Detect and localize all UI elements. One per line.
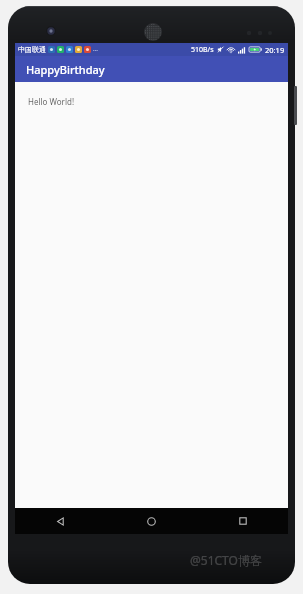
staticText: 510B/s	[191, 45, 214, 55]
staticText: HappyBirthday	[26, 62, 105, 77]
button[interactable]: Back	[15, 508, 106, 534]
button[interactable]: Recent apps	[197, 508, 288, 534]
staticText: ···	[93, 46, 98, 54]
staticText: Hello World!	[28, 96, 75, 107]
button[interactable]: Home	[106, 508, 197, 534]
staticText: @51CTO博客	[190, 552, 262, 568]
staticText: 20:19	[265, 45, 285, 55]
staticText: 中国联通	[18, 45, 46, 54]
button[interactable]: HappyBirthday	[15, 56, 288, 82]
